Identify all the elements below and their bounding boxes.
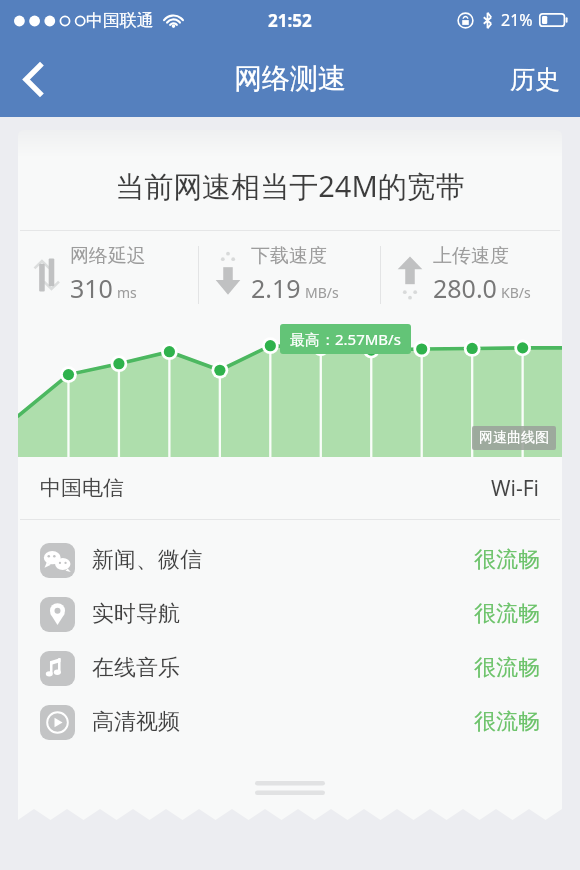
staticText: 在线音乐 [92, 654, 180, 682]
staticText: 高清视频 [92, 708, 180, 736]
staticText: KB/s [501, 283, 531, 302]
staticText: 上传速度 [433, 244, 509, 268]
staticText: 310 [70, 271, 113, 305]
button[interactable]: Video [18, 695, 562, 749]
staticText: 实时导航 [92, 600, 180, 628]
other: Navigation [40, 597, 75, 632]
staticText: 很流畅 [474, 654, 540, 682]
other: Music [40, 651, 75, 686]
staticText: 网络测速 [234, 61, 346, 96]
staticText: ms [117, 283, 137, 302]
staticText: 下载速度 [251, 244, 327, 268]
staticText: 最高：2.57MB/s [290, 329, 401, 349]
staticText: 280.0 [433, 271, 497, 305]
staticText: 很流畅 [474, 600, 540, 628]
button[interactable]: 历史 [490, 47, 580, 111]
staticText: 当前网速相当于24M的宽带 [18, 166, 562, 206]
staticText: 中国电信 [40, 475, 124, 501]
other: Video [40, 705, 75, 740]
staticText: 很流畅 [474, 708, 540, 736]
staticText: 2.19 [251, 271, 301, 305]
staticText: 中国联通 [86, 10, 154, 31]
button[interactable]: Back [0, 47, 64, 111]
button[interactable]: Navigation [18, 587, 562, 641]
staticText: 网速曲线图 [479, 429, 549, 447]
staticText: 网络延迟 [70, 244, 146, 268]
staticText: Wi-Fi [491, 474, 540, 503]
staticText: 很流畅 [474, 546, 540, 574]
staticText: MB/s [305, 283, 339, 302]
staticText: 21:52 [268, 9, 312, 32]
button[interactable]: WeChat [18, 533, 562, 587]
staticText: 历史 [510, 64, 560, 95]
staticText: 新闻、微信 [92, 546, 202, 574]
staticText: 21% [501, 9, 533, 31]
other: WeChat [40, 543, 75, 578]
button[interactable]: Music [18, 641, 562, 695]
